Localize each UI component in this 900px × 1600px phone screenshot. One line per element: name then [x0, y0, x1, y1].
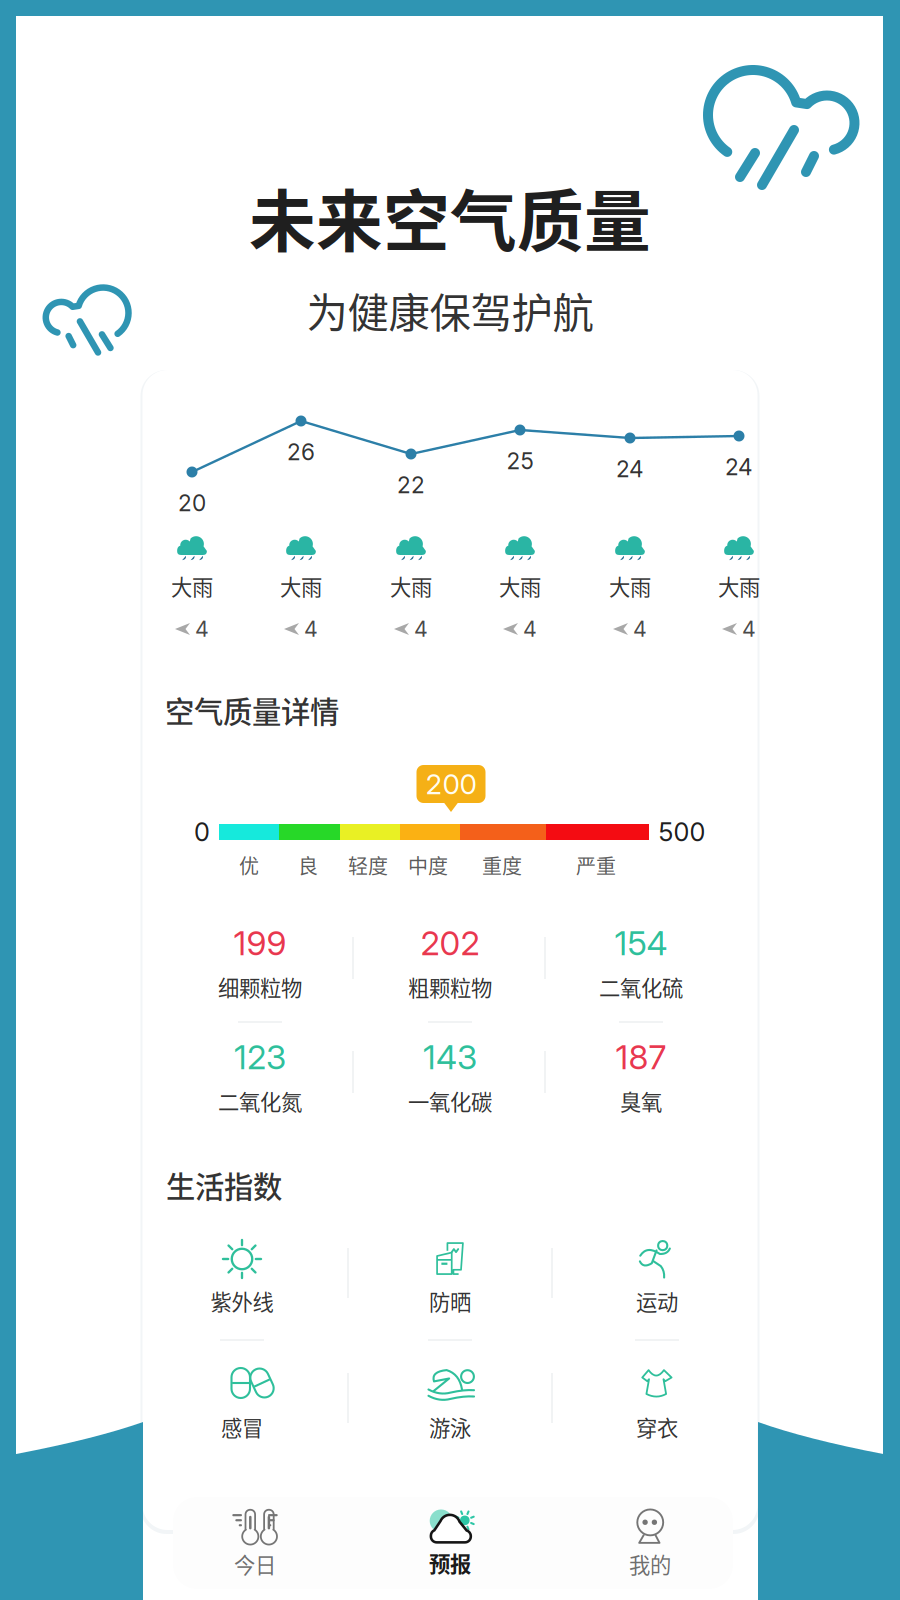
- staticText: 良: [298, 850, 318, 879]
- staticText: 细颗粒物: [218, 972, 302, 1002]
- staticText: 大雨: [499, 571, 541, 601]
- staticText: 大雨: [609, 571, 651, 601]
- staticText: 500: [658, 817, 705, 847]
- staticText: 粗颗粒物: [408, 972, 492, 1002]
- staticText: 二氧化氮: [218, 1086, 302, 1116]
- staticText: 紫外线: [210, 1286, 273, 1316]
- staticText: 穿衣: [636, 1412, 678, 1442]
- staticText: 202: [420, 923, 479, 963]
- staticText: 重度: [482, 850, 522, 879]
- staticText: 24: [725, 453, 753, 481]
- staticText: 4: [304, 616, 318, 642]
- staticText: 今日: [234, 1549, 276, 1579]
- staticText: 臭氧: [620, 1086, 662, 1116]
- staticText: 严重: [576, 850, 616, 879]
- staticText: 防晒: [429, 1286, 471, 1316]
- staticText: 4: [523, 616, 537, 642]
- staticText: 二氧化硫: [599, 972, 683, 1002]
- staticText: 游泳: [429, 1412, 471, 1442]
- staticText: 199: [233, 923, 286, 963]
- staticText: 143: [423, 1037, 477, 1077]
- staticText: 20: [178, 489, 206, 517]
- staticText: 我的: [629, 1549, 671, 1579]
- staticText: 200: [425, 767, 476, 801]
- staticText: 4: [742, 616, 756, 642]
- button[interactable]: 我的: [565, 1497, 735, 1585]
- staticText: 154: [614, 923, 667, 963]
- staticText: 24: [616, 455, 644, 483]
- staticText: 空气质量详情: [165, 689, 339, 731]
- staticText: 轻度: [348, 850, 388, 879]
- staticText: 一氧化碳: [408, 1086, 492, 1116]
- staticText: 生活指数: [166, 1164, 282, 1206]
- staticText: 4: [195, 616, 209, 642]
- staticText: 大雨: [280, 571, 322, 601]
- staticText: 中度: [408, 850, 448, 879]
- staticText: 26: [287, 438, 315, 466]
- staticText: 大雨: [390, 571, 432, 601]
- staticText: 187: [615, 1037, 666, 1077]
- staticText: 未来空气质量: [249, 169, 651, 265]
- staticText: 预报: [429, 1548, 471, 1578]
- staticText: 大雨: [171, 571, 213, 601]
- staticText: 0: [194, 817, 210, 847]
- staticText: 4: [414, 616, 428, 642]
- staticText: 为健康保驾护航: [306, 280, 593, 340]
- staticText: 123: [234, 1037, 286, 1077]
- staticText: 25: [506, 447, 533, 475]
- staticText: 优: [239, 850, 259, 879]
- button[interactable]: 预报: [365, 1497, 535, 1585]
- staticText: 运动: [636, 1286, 678, 1316]
- staticText: 4: [633, 616, 647, 642]
- button[interactable]: 今日: [170, 1497, 340, 1585]
- staticText: 22: [397, 471, 425, 499]
- staticText: 大雨: [718, 571, 760, 601]
- staticText: 感冒: [221, 1412, 263, 1442]
